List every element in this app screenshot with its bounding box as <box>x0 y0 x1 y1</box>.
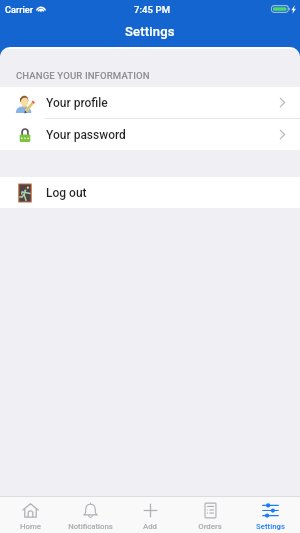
staticText: Carrier <box>5 4 33 15</box>
button[interactable]: Your profile <box>0 87 300 118</box>
staticText: Your profile <box>46 96 108 110</box>
staticText: Orders <box>198 522 222 531</box>
button[interactable]: Your password <box>0 119 300 150</box>
staticText: Add <box>143 522 157 531</box>
staticText: Home <box>20 522 41 531</box>
button[interactable]: Orders <box>180 497 240 533</box>
button[interactable]: Add <box>120 497 180 533</box>
staticText: Settings <box>256 522 285 531</box>
staticText: CHANGE YOUR INFORMATION <box>16 70 150 81</box>
staticText: 7:45 PM <box>134 4 171 15</box>
button[interactable]: Log out <box>0 177 300 208</box>
button[interactable]: Notifications <box>60 497 120 533</box>
staticText: Your password <box>46 128 126 142</box>
button[interactable]: Settings <box>240 497 300 533</box>
button[interactable]: Home <box>0 497 60 533</box>
staticText: Settings <box>125 24 175 39</box>
staticText: Notifications <box>68 522 113 531</box>
staticText: Log out <box>46 186 87 200</box>
